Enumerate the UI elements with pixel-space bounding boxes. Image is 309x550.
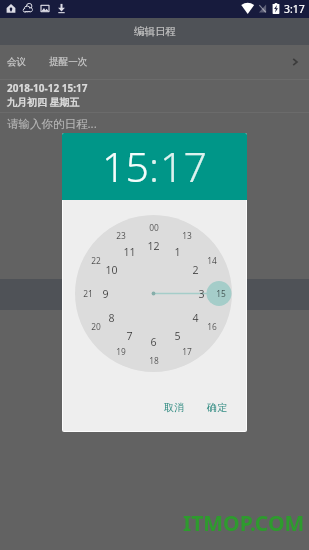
other: More	[290, 57, 300, 67]
staticText: 00	[149, 222, 159, 233]
staticText: ITMOP.COM	[183, 509, 305, 538]
staticText: 提醒一次	[49, 56, 88, 68]
staticText: 9	[102, 287, 109, 301]
staticText: 7	[126, 329, 133, 343]
staticText: 18	[149, 355, 159, 366]
button[interactable]: 确定	[201, 396, 234, 419]
staticText: :	[149, 138, 160, 194]
staticText: 会议	[7, 56, 27, 68]
staticText: 23	[116, 230, 126, 241]
staticText: 13	[182, 230, 192, 241]
button[interactable]: 请输入你的日程...	[0, 113, 309, 279]
staticText: 4	[192, 311, 199, 325]
button[interactable]: 15	[102, 138, 149, 194]
staticText: 8	[108, 311, 115, 325]
staticText: 3:17	[284, 2, 305, 16]
button[interactable]: 17	[160, 138, 207, 194]
staticText: 3	[198, 287, 205, 301]
staticText: 20	[91, 321, 101, 332]
staticText: 17	[182, 346, 192, 357]
staticText: 确定	[207, 401, 228, 414]
staticText: 12	[147, 239, 160, 253]
staticText: 10	[105, 263, 118, 277]
staticText: 编辑日程	[134, 25, 176, 38]
staticText: 2	[192, 263, 199, 277]
staticText: 5	[174, 329, 181, 343]
button[interactable]: 2018-10-12 15:17	[0, 80, 309, 112]
staticText: 14	[207, 255, 217, 266]
staticText: 取消	[164, 401, 185, 414]
staticText: 19	[116, 346, 126, 357]
button[interactable]: 取消	[158, 396, 191, 419]
button[interactable]: 会议	[0, 45, 309, 79]
staticText: 6	[150, 335, 157, 349]
staticText: 请输入你的日程...	[7, 116, 97, 132]
staticText: 21	[83, 288, 93, 299]
staticText: 1	[174, 245, 181, 259]
staticText: 2018-10-12 15:17	[7, 81, 88, 95]
staticText: 22	[91, 255, 101, 266]
staticText: 15	[216, 288, 226, 299]
staticText: 11	[123, 245, 136, 259]
staticText: 九月初四 星期五	[7, 95, 80, 109]
staticText: 16	[207, 321, 217, 332]
